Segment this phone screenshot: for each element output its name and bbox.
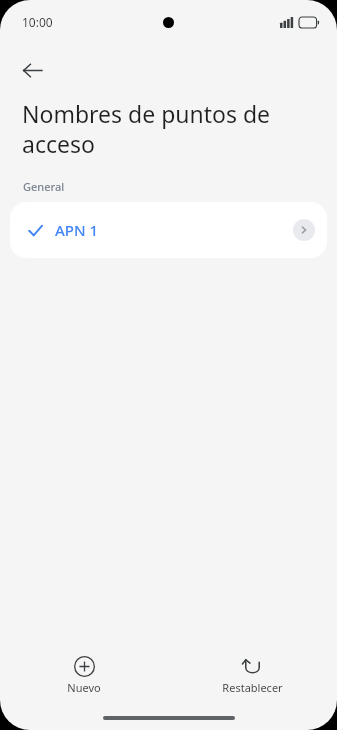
button[interactable]: Back: [10, 48, 54, 92]
staticText: Restablecer: [222, 680, 283, 695]
staticText: General: [23, 179, 65, 194]
button[interactable]: Edit APN 1: [293, 219, 315, 241]
staticText: Nombres de puntos de acceso: [22, 98, 311, 159]
button[interactable]: Restablecer: [206, 652, 299, 699]
staticText: Nuevo: [67, 680, 101, 695]
staticText: 10:00: [22, 14, 53, 30]
staticText: APN 1: [55, 220, 99, 240]
button[interactable]: Nuevo: [51, 652, 117, 699]
button[interactable]: APN 1: [10, 202, 327, 258]
